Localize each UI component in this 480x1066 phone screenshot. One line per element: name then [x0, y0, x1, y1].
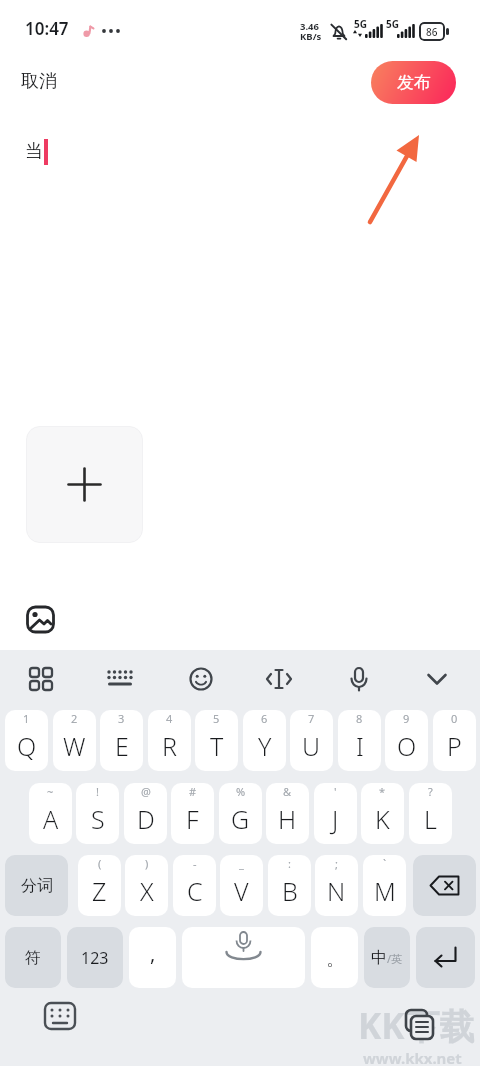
- button[interactable]: [20, 599, 60, 639]
- button[interactable]: [182, 927, 305, 988]
- button[interactable]: [179, 657, 223, 701]
- staticText: `: [383, 856, 387, 871]
- staticText: 9: [403, 711, 410, 726]
- staticText: ~: [47, 784, 54, 799]
- button[interactable]: 8: [338, 710, 381, 771]
- staticText: X: [140, 874, 154, 908]
- staticText: L: [424, 802, 437, 836]
- button[interactable]: ': [314, 783, 357, 844]
- button[interactable]: #: [171, 783, 214, 844]
- button[interactable]: [415, 657, 459, 701]
- button[interactable]: 1: [5, 710, 48, 771]
- staticText: 6: [261, 711, 268, 726]
- staticText: 5: [213, 711, 220, 726]
- staticText: 中: [371, 948, 387, 968]
- button[interactable]: 123: [67, 927, 123, 988]
- staticText: *: [379, 784, 386, 799]
- button[interactable]: &: [266, 783, 309, 844]
- button[interactable]: [98, 657, 142, 701]
- staticText: Z: [92, 874, 107, 908]
- staticText: K: [375, 802, 390, 836]
- button[interactable]: _: [220, 855, 263, 916]
- staticText: 2: [71, 711, 78, 726]
- staticText: ;: [335, 856, 338, 871]
- staticText: C: [187, 874, 203, 908]
- staticText: J: [332, 802, 339, 836]
- staticText: S: [91, 802, 105, 836]
- button[interactable]: 。: [311, 927, 358, 988]
- button[interactable]: *: [361, 783, 404, 844]
- staticText: -: [193, 856, 197, 871]
- staticText: KK下载: [358, 1002, 475, 1050]
- staticText: F: [186, 802, 199, 836]
- button[interactable]: 4: [148, 710, 191, 771]
- button[interactable]: ;: [315, 855, 358, 916]
- button[interactable]: !: [76, 783, 119, 844]
- button[interactable]: 2: [53, 710, 96, 771]
- staticText: !: [96, 784, 99, 799]
- button[interactable]: @: [124, 783, 167, 844]
- staticText: Y: [258, 729, 272, 763]
- button[interactable]: 取消: [21, 70, 57, 93]
- button[interactable]: 7: [290, 710, 333, 771]
- button[interactable]: `: [363, 855, 406, 916]
- staticText: _: [239, 856, 244, 871]
- button[interactable]: 0: [433, 710, 476, 771]
- button[interactable]: [413, 855, 476, 916]
- staticText: 3.46 KB/s: [300, 20, 322, 43]
- button[interactable]: 9: [385, 710, 428, 771]
- staticText: ,: [150, 940, 156, 967]
- staticText: 0: [451, 711, 458, 726]
- staticText: ): [145, 856, 149, 871]
- button[interactable]: ,: [129, 927, 176, 988]
- button[interactable]: ?: [409, 783, 452, 844]
- staticText: 7: [308, 711, 315, 726]
- staticText: 发布: [397, 72, 431, 93]
- button[interactable]: 发布: [371, 61, 456, 104]
- staticText: ?: [428, 784, 433, 799]
- staticText: :: [288, 856, 291, 871]
- staticText: 4: [166, 711, 173, 726]
- staticText: T: [210, 729, 224, 763]
- staticText: U: [302, 729, 321, 763]
- button[interactable]: (: [78, 855, 121, 916]
- button[interactable]: 5: [195, 710, 238, 771]
- staticText: 123: [81, 947, 109, 969]
- button[interactable]: 3: [100, 710, 143, 771]
- button[interactable]: %: [219, 783, 262, 844]
- staticText: ': [334, 784, 337, 799]
- staticText: 分词: [21, 876, 53, 896]
- staticText: V: [234, 874, 249, 908]
- staticText: D: [137, 802, 155, 836]
- button[interactable]: ~: [29, 783, 72, 844]
- staticText: A: [43, 802, 59, 836]
- staticText: E: [115, 729, 129, 763]
- staticText: R: [162, 729, 177, 763]
- button[interactable]: ): [125, 855, 168, 916]
- button[interactable]: [19, 657, 63, 701]
- button[interactable]: [38, 994, 82, 1038]
- button[interactable]: -: [173, 855, 216, 916]
- button[interactable]: [257, 657, 301, 701]
- staticText: 3: [118, 711, 125, 726]
- button[interactable]: [416, 927, 475, 988]
- button[interactable]: 中: [364, 927, 410, 988]
- staticText: &: [283, 784, 292, 799]
- button[interactable]: :: [268, 855, 311, 916]
- button[interactable]: 6: [243, 710, 286, 771]
- staticText: P: [447, 729, 462, 763]
- button[interactable]: [337, 657, 381, 701]
- staticText: /英: [387, 951, 403, 966]
- button[interactable]: [26, 426, 143, 543]
- button[interactable]: [398, 1005, 440, 1045]
- staticText: 5G: [386, 17, 399, 31]
- staticText: #: [189, 784, 197, 799]
- staticText: 8: [356, 711, 363, 726]
- button[interactable]: 分词: [5, 855, 68, 916]
- staticText: www.kkx.net: [363, 1048, 462, 1066]
- button[interactable]: 符: [5, 927, 61, 988]
- staticText: N: [327, 874, 346, 908]
- staticText: G: [231, 802, 250, 836]
- staticText: 10:47: [25, 17, 69, 40]
- staticText: 1: [23, 711, 30, 726]
